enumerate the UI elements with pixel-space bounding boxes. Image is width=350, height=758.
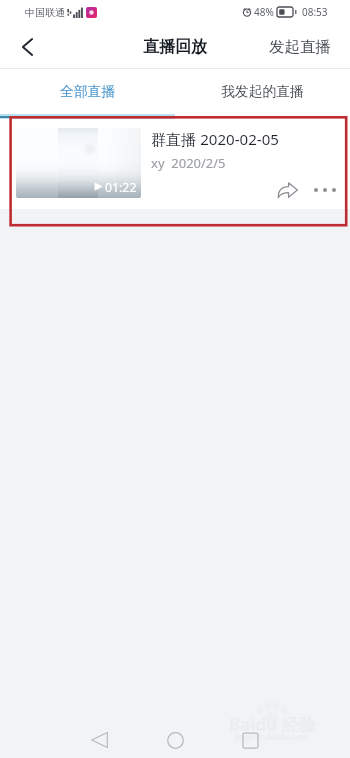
button[interactable]: Share [273, 176, 301, 204]
staticText: 中国联通 [25, 6, 65, 19]
button[interactable]: 全部直播 [0, 76, 175, 106]
staticText: 群直播 2020-02-05 [151, 129, 279, 150]
button[interactable]: 01:22 [0, 119, 350, 209]
button[interactable]: More options [311, 176, 339, 204]
staticText: 01:22 [105, 179, 137, 196]
staticText: Baidu 经验 [229, 713, 316, 736]
staticText: jingyan.baidu.com [235, 731, 309, 742]
staticText: 发起直播 [269, 37, 331, 57]
staticText: xy 2020/2/5 [151, 154, 226, 172]
button[interactable]: Recent apps [228, 723, 272, 757]
staticText: 全部直播 [60, 83, 116, 100]
staticText: 我发起的直播 [221, 83, 304, 100]
button[interactable]: 发起直播 [269, 24, 350, 69]
button[interactable]: Back [0, 24, 54, 69]
staticText: 48% [254, 5, 274, 19]
button[interactable]: 我发起的直播 [175, 76, 350, 106]
staticText: 直播回放 [143, 37, 207, 57]
staticText: 08:53 [302, 5, 328, 19]
button[interactable]: Back [77, 723, 121, 757]
button[interactable]: Home [153, 723, 197, 757]
